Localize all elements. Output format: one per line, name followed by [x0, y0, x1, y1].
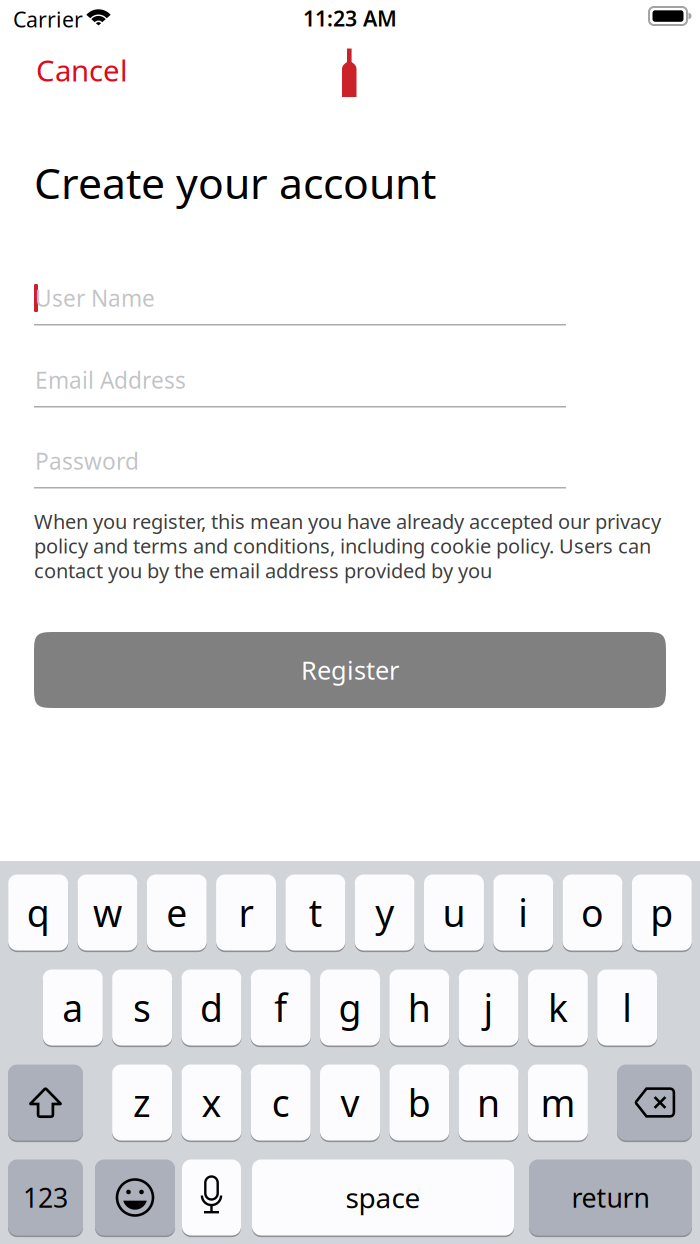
button[interactable]: r	[216, 873, 276, 952]
button[interactable]: f	[251, 968, 311, 1047]
staticText: s	[133, 983, 151, 1032]
staticText: f	[274, 983, 287, 1032]
button[interactable]: g	[320, 968, 380, 1047]
button[interactable]: q	[8, 873, 68, 952]
button[interactable]: o	[562, 873, 622, 952]
button[interactable]: space	[252, 1158, 514, 1237]
button[interactable]: p	[632, 873, 692, 952]
staticText: Create your account	[34, 154, 436, 211]
button[interactable]: c	[251, 1063, 311, 1142]
staticText: r	[238, 888, 253, 937]
button[interactable]: v	[320, 1063, 380, 1142]
button[interactable]: User Name	[34, 274, 566, 355]
staticText: b	[408, 1078, 431, 1127]
staticText: y	[375, 888, 394, 937]
button[interactable]: t	[285, 873, 345, 952]
staticText: g	[338, 983, 361, 1032]
staticText: w	[93, 888, 122, 937]
button[interactable]: return	[529, 1158, 692, 1237]
button[interactable]: k	[528, 968, 588, 1047]
button[interactable]: w	[77, 873, 137, 952]
staticText: p	[650, 888, 673, 937]
staticText: k	[548, 983, 568, 1032]
staticText: l	[622, 983, 632, 1032]
button[interactable]: s	[112, 968, 172, 1047]
button[interactable]: Register	[34, 632, 666, 708]
staticText: Carrier	[13, 5, 83, 33]
staticText: x	[201, 1078, 221, 1127]
staticText: Email Address	[35, 365, 186, 395]
button[interactable]: Delete	[617, 1063, 692, 1142]
staticText: 11:23 AM	[303, 4, 397, 32]
staticText: n	[477, 1078, 500, 1127]
button[interactable]: l	[597, 968, 657, 1047]
staticText: j	[484, 983, 494, 1032]
button[interactable]: i	[493, 873, 553, 952]
staticText: Cancel	[36, 50, 128, 89]
staticText: 123	[23, 1180, 68, 1215]
staticText: t	[309, 888, 322, 937]
button[interactable]: y	[355, 873, 415, 952]
button[interactable]: d	[181, 968, 241, 1047]
button[interactable]: Email Address	[34, 356, 566, 437]
staticText: m	[540, 1078, 575, 1127]
button[interactable]: j	[459, 968, 519, 1047]
staticText: c	[272, 1078, 290, 1127]
staticText: Password	[35, 446, 139, 476]
staticText: e	[166, 888, 187, 937]
button[interactable]: n	[459, 1063, 519, 1142]
button[interactable]: Password	[34, 437, 566, 518]
button[interactable]: h	[389, 968, 449, 1047]
staticText: When you register, this mean you have al…	[34, 508, 661, 584]
staticText: return	[571, 1180, 649, 1215]
button[interactable]: Emoji keyboard	[95, 1158, 175, 1237]
button[interactable]: b	[389, 1063, 449, 1142]
staticText: h	[408, 983, 431, 1032]
button[interactable]: a	[43, 968, 103, 1047]
staticText: Register	[301, 653, 399, 687]
button[interactable]: 123	[8, 1158, 83, 1237]
button[interactable]: m	[528, 1063, 588, 1142]
button[interactable]: Shift	[8, 1063, 83, 1142]
button[interactable]: Dictation	[182, 1158, 241, 1237]
staticText: d	[200, 983, 223, 1032]
staticText: v	[340, 1078, 359, 1127]
button[interactable]: Cancel	[36, 43, 144, 97]
staticText: q	[27, 888, 50, 937]
staticText: space	[345, 1179, 420, 1216]
staticText: z	[133, 1078, 151, 1127]
staticText: User Name	[35, 283, 155, 313]
staticText: u	[442, 888, 465, 937]
button[interactable]: z	[112, 1063, 172, 1142]
staticText: i	[518, 888, 528, 937]
button[interactable]: e	[147, 873, 207, 952]
staticText: o	[581, 888, 604, 937]
button[interactable]: x	[181, 1063, 241, 1142]
button[interactable]: u	[424, 873, 484, 952]
staticText: a	[62, 983, 83, 1032]
